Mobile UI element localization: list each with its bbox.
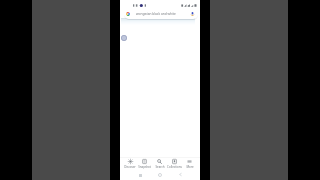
button[interactable]: Back: [170, 169, 190, 180]
button[interactable]: wongwian black and white: [124, 9, 198, 19]
button[interactable]: More: [182, 154, 197, 169]
other: Voice search: [191, 12, 194, 16]
button[interactable]: Recents: [130, 169, 150, 180]
staticText: wongwian black and white: [136, 12, 176, 16]
staticText: Collections: [167, 165, 182, 169]
button[interactable]: Search: [152, 154, 167, 169]
button[interactable]: Collections: [167, 154, 182, 169]
button[interactable]: Discover: [123, 154, 137, 169]
staticText: Discover: [124, 165, 136, 169]
button[interactable]: Home: [150, 169, 170, 180]
staticText: Snapshot: [138, 165, 151, 169]
staticText: More: [186, 165, 194, 169]
staticText: Search: [155, 165, 165, 169]
button[interactable]: Snapshot: [137, 154, 152, 169]
